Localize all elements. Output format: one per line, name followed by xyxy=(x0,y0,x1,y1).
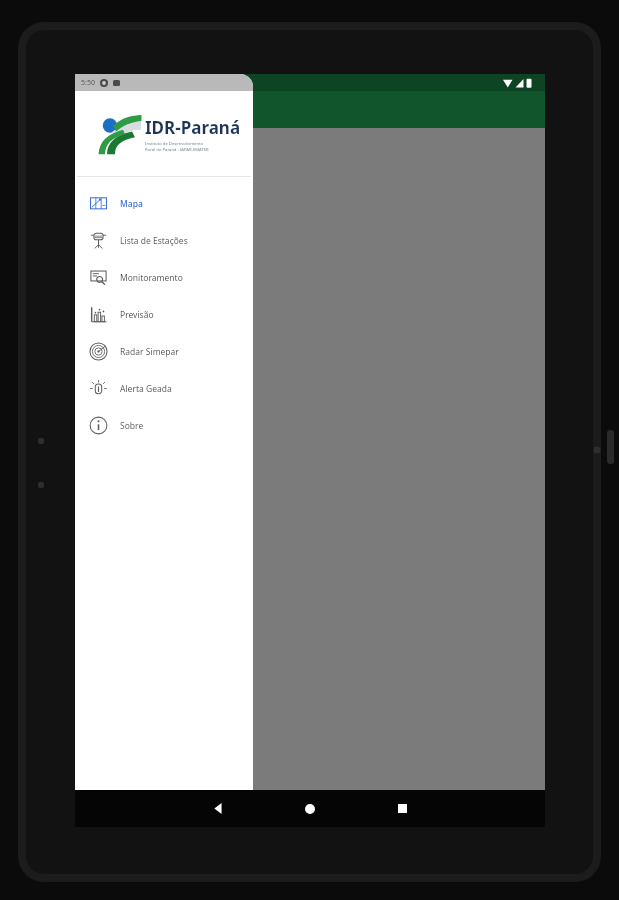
staticText: Lista de Estações xyxy=(120,235,188,247)
button[interactable]: Radar Simepar xyxy=(75,333,253,370)
staticText: Instituto de Desenvolvimento Rural do Pa… xyxy=(145,141,209,153)
staticText: which are not supported by your device. xyxy=(79,133,220,143)
staticText: Sobre xyxy=(120,420,144,432)
button[interactable]: Sobre xyxy=(75,407,253,444)
staticText: Monitoramento xyxy=(120,272,183,284)
button[interactable]: Mapa xyxy=(75,185,253,222)
button[interactable]: Alerta Geada xyxy=(75,370,253,407)
button[interactable]: Home xyxy=(279,790,341,827)
staticText: Radar Simepar xyxy=(120,346,179,358)
button[interactable]: Back xyxy=(187,790,249,827)
staticText: IDR-Paraná xyxy=(145,116,241,139)
staticText: Alerta Geada xyxy=(120,383,172,395)
staticText: Previsão xyxy=(120,309,154,321)
button[interactable]: Recent apps xyxy=(371,790,433,827)
staticText: 5:50 xyxy=(81,78,95,88)
staticText: Mapa xyxy=(120,198,143,210)
staticText: IDR Clima xyxy=(96,99,171,121)
button[interactable]: Monitoramento xyxy=(75,259,253,296)
button[interactable]: Lista de Estações xyxy=(75,222,253,259)
button[interactable]: Previsão xyxy=(75,296,253,333)
